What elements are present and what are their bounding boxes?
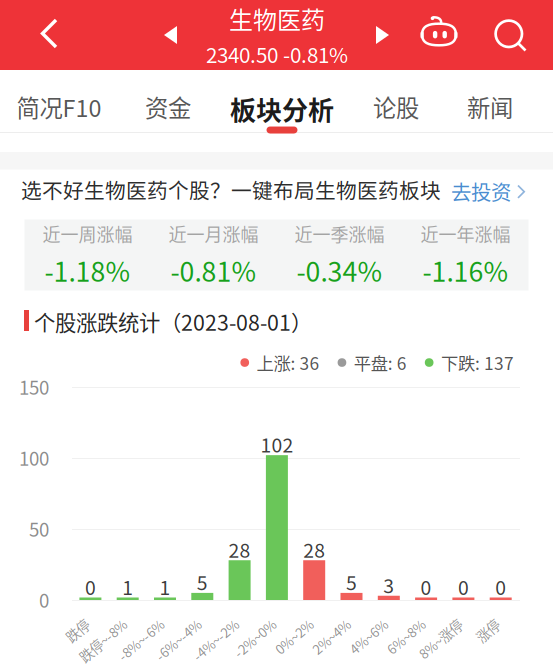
- button[interactable]: 论股: [338, 70, 454, 133]
- button[interactable]: Previous sector: [152, 0, 192, 70]
- staticText: 平盘: 6: [354, 350, 407, 375]
- staticText: 4%~6%: [346, 627, 391, 646]
- staticText: 2%~4%: [309, 627, 354, 646]
- staticText: 近一月涨幅: [168, 221, 258, 247]
- staticText: 生物医药: [229, 1, 325, 36]
- staticText: 跌停: [64, 621, 90, 640]
- staticText: 8%~涨停: [414, 629, 466, 648]
- staticText: 下跌: 137: [441, 350, 514, 375]
- staticText: 0: [85, 572, 96, 600]
- button[interactable]: 简况F10: [1, 70, 117, 133]
- staticText: 板块分析: [230, 90, 334, 128]
- staticText: 0%~2%: [271, 627, 316, 646]
- staticText: 论股: [373, 90, 419, 124]
- staticText: 0: [39, 586, 49, 613]
- staticText: -4%~-2%: [188, 630, 243, 649]
- staticText: 跌停~-8%: [74, 631, 131, 650]
- button[interactable]: 板块分析: [224, 70, 340, 133]
- staticText: 102: [260, 430, 293, 458]
- staticText: 去投资: [451, 176, 511, 206]
- button[interactable]: Back: [0, 0, 74, 70]
- button[interactable]: 资金: [110, 70, 226, 133]
- button[interactable]: 新闻: [432, 70, 548, 133]
- button[interactable]: Next sector: [366, 0, 406, 70]
- staticText: 0: [495, 572, 506, 600]
- staticText: 新闻: [467, 90, 513, 124]
- button[interactable]: Search: [480, 0, 538, 70]
- staticText: -6%~-4%: [151, 630, 206, 649]
- staticText: 1: [159, 572, 170, 600]
- staticText: 近一周涨幅: [42, 221, 132, 247]
- staticText: 0: [458, 572, 469, 600]
- staticText: 近一季涨幅: [294, 221, 384, 247]
- staticText: -1.18%: [44, 251, 130, 289]
- staticText: -2%~0%: [230, 629, 280, 648]
- staticText: 5: [346, 568, 357, 596]
- staticText: 100: [19, 444, 49, 471]
- staticText: 50: [29, 515, 49, 542]
- staticText: -0.81%: [170, 251, 256, 289]
- staticText: 3: [383, 571, 394, 599]
- staticText: 28: [229, 535, 251, 563]
- staticText: -1.16%: [422, 251, 508, 289]
- staticText: 1: [122, 572, 133, 600]
- staticText: 选不好生物医药个股？一键布局生物医药板块: [21, 174, 441, 204]
- button[interactable]: AI assistant: [413, 0, 469, 70]
- staticText: -0.34%: [296, 251, 382, 289]
- staticText: 6%~8%: [383, 627, 428, 646]
- staticText: -8%~-6%: [113, 630, 168, 649]
- staticText: 0: [421, 572, 432, 600]
- staticText: 个股涨跌统计（2023-08-01）: [34, 306, 312, 337]
- staticText: 28: [303, 535, 325, 563]
- staticText: 5: [197, 568, 208, 596]
- staticText: 近一年涨幅: [420, 221, 510, 247]
- staticText: 资金: [145, 90, 191, 124]
- staticText: 简况F10: [16, 90, 101, 124]
- staticText: 上涨: 36: [257, 350, 320, 375]
- staticText: 涨停: [475, 621, 501, 640]
- button[interactable]: 选不好生物医药个股？一键布局生物医药板块: [0, 171, 553, 219]
- staticText: 150: [19, 373, 49, 400]
- staticText: 2340.50 -0.81%: [206, 39, 348, 69]
